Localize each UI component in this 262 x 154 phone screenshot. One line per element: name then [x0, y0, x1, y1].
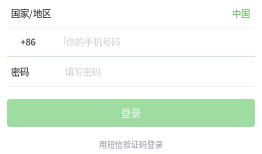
staticText: 中国 [232, 6, 250, 20]
staticText: 你的手机号码 [66, 35, 120, 48]
staticText: 用短信验证码登录 [99, 138, 163, 150]
button[interactable]: +86 [11, 28, 45, 55]
staticText: 登录 [121, 106, 141, 120]
staticText: 密码 [11, 65, 29, 78]
staticText: +86 [20, 35, 35, 48]
button[interactable]: 国家/地区 [0, 0, 262, 27]
button[interactable]: 登录 [7, 99, 255, 127]
staticText: 填写密码 [65, 65, 101, 78]
staticText: 国家/地区 [11, 6, 51, 20]
button[interactable]: 用短信验证码登录 [0, 137, 262, 151]
